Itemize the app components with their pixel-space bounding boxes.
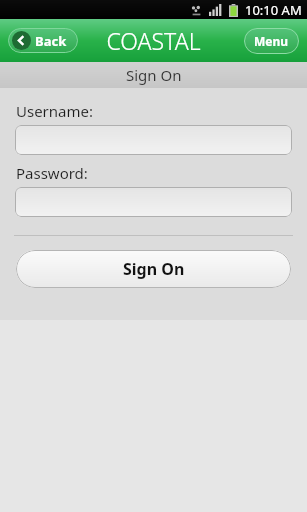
button[interactable]: Menu bbox=[244, 28, 299, 54]
button[interactable] bbox=[15, 125, 292, 155]
staticText: Back bbox=[35, 32, 67, 50]
staticText: Sign On bbox=[126, 65, 182, 85]
button[interactable] bbox=[15, 187, 292, 217]
staticText: Menu bbox=[254, 33, 289, 49]
button[interactable]: Sign On bbox=[16, 250, 291, 288]
staticText: 10:10 AM bbox=[245, 1, 302, 19]
staticText: COASTAL bbox=[106, 25, 201, 56]
staticText: Sign On bbox=[123, 258, 185, 280]
staticText: Username: bbox=[16, 101, 93, 121]
button[interactable]: Back bbox=[8, 28, 78, 53]
staticText: Password: bbox=[16, 163, 88, 183]
